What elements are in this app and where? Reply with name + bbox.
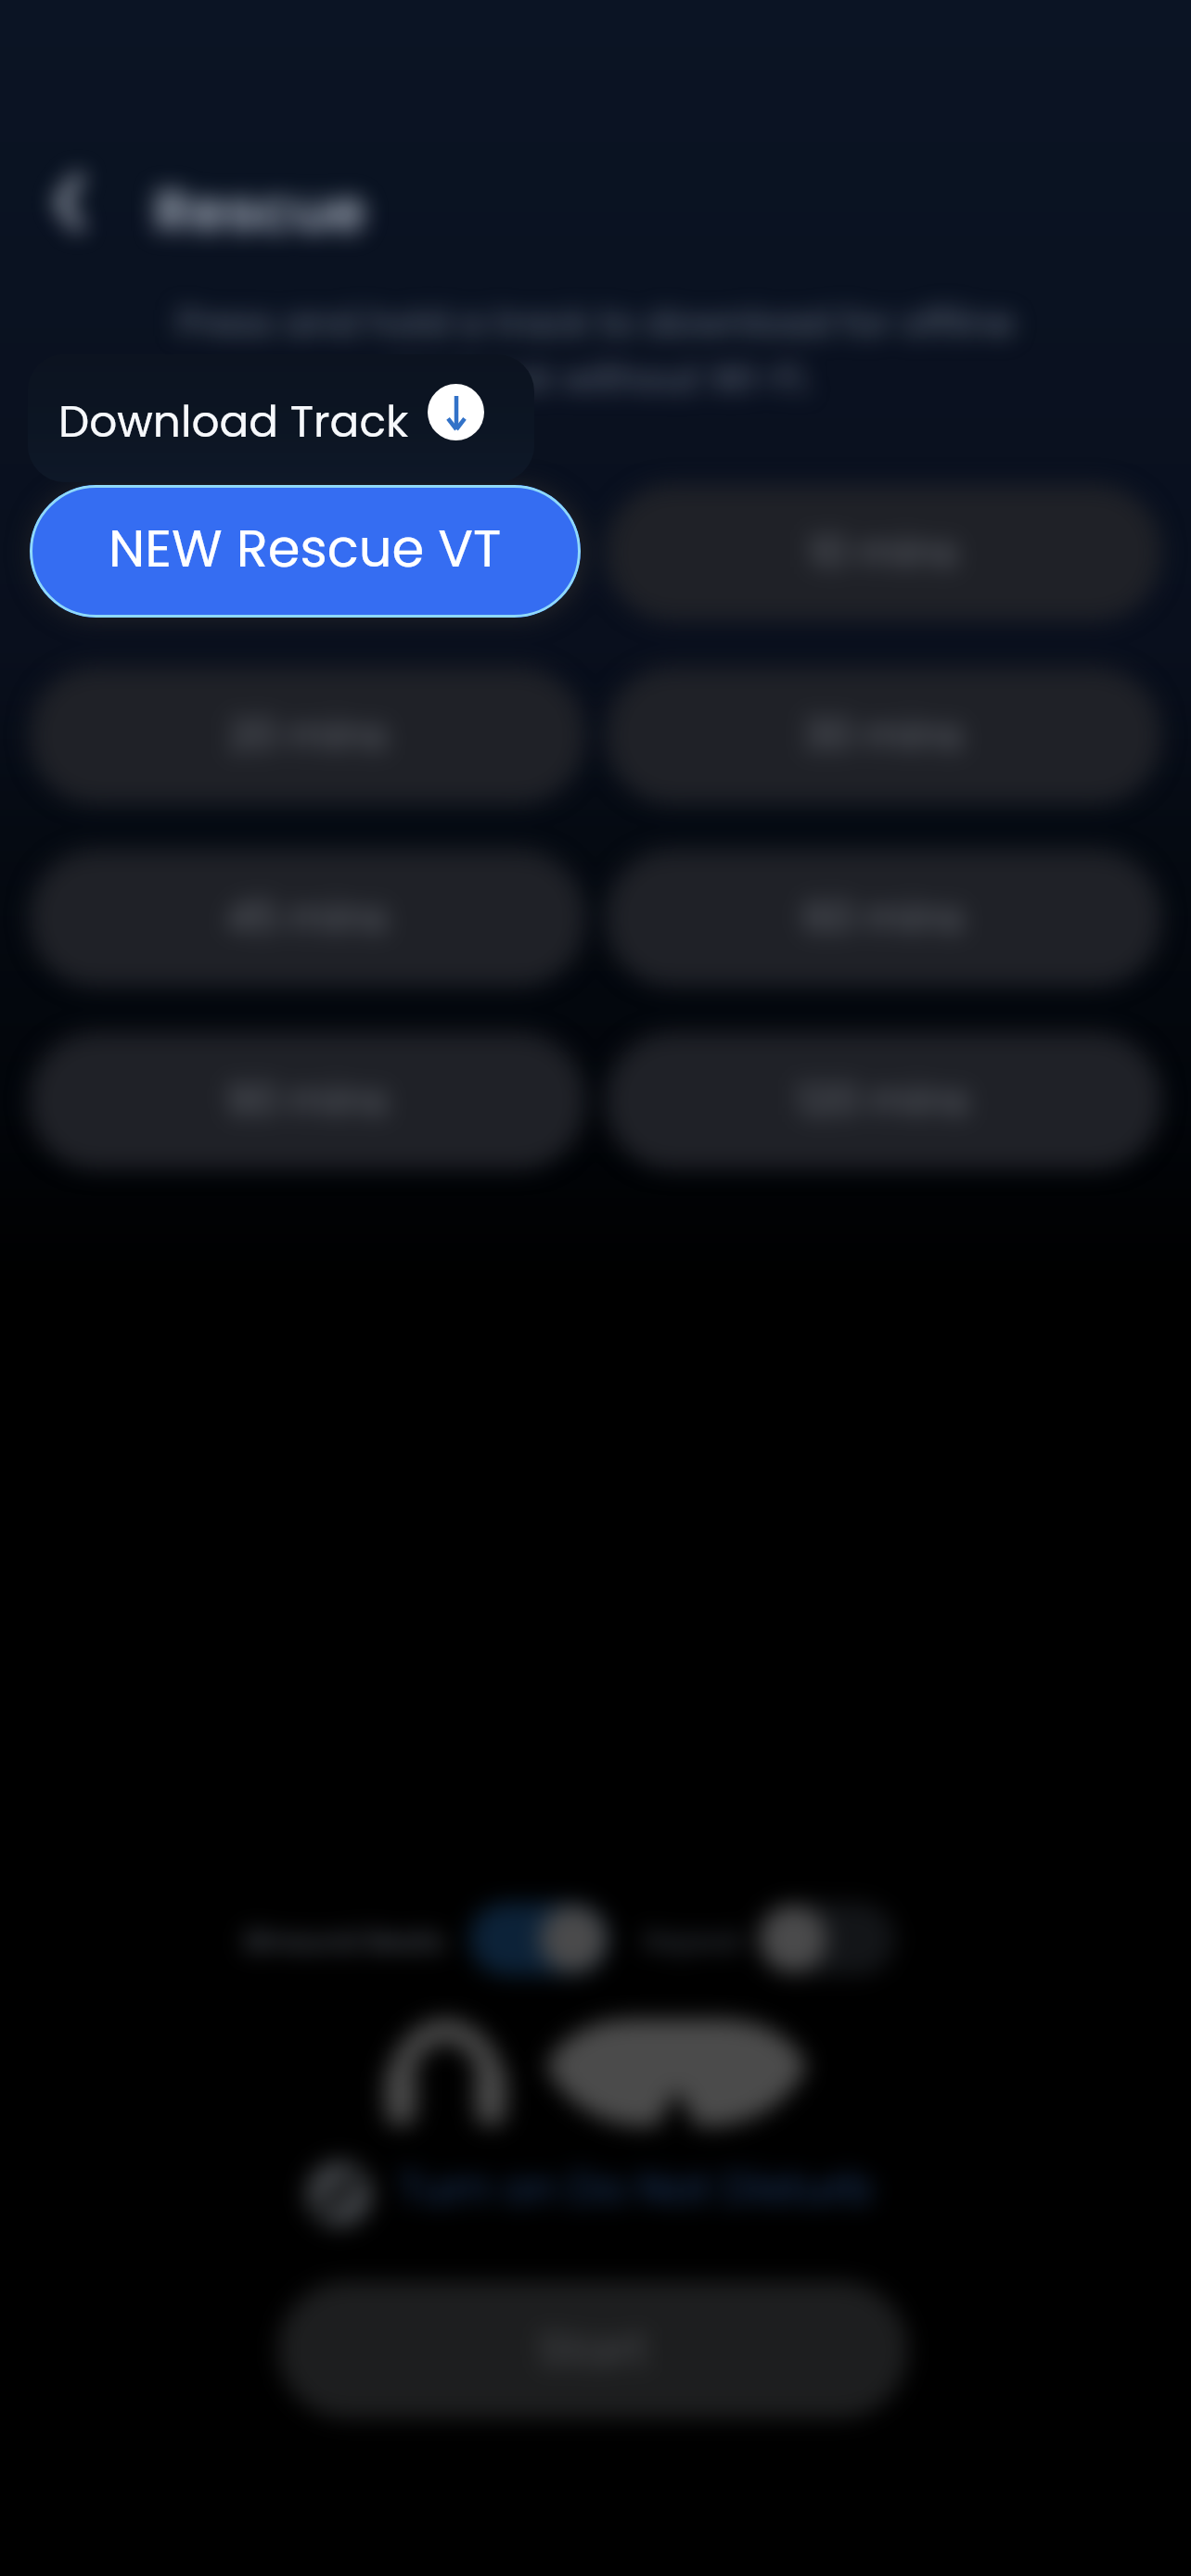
staticText: 10 mins: [809, 524, 958, 581]
button[interactable]: 30 mins: [606, 667, 1161, 804]
button[interactable]: 120 mins: [606, 1032, 1161, 1169]
button[interactable]: 45 mins: [30, 849, 585, 987]
staticText: Download Track: [58, 391, 409, 453]
staticText: Rescue: [154, 171, 366, 251]
button[interactable]: 90 mins: [30, 1032, 585, 1169]
button[interactable]: 60 mins: [606, 849, 1161, 987]
staticText: 20 mins: [228, 707, 388, 764]
staticText: Press and hold a track to download for o…: [0, 297, 1191, 404]
staticText: NEW Rescue VT: [109, 512, 502, 584]
button[interactable]: Download Track: [28, 354, 534, 482]
staticText: Repeat: [644, 1922, 743, 1961]
staticText: Binaural Beats: [245, 1922, 445, 1961]
button[interactable]: NEW Rescue VT: [30, 485, 581, 618]
button[interactable]: 20 mins: [30, 667, 585, 804]
button[interactable]: 10 mins: [606, 484, 1161, 621]
button[interactable]: Start: [278, 2281, 908, 2418]
button[interactable]: Do Not Disturb: [306, 2161, 373, 2227]
other: VR headset: [546, 2019, 807, 2131]
button[interactable]: Repeat toggle: [757, 1903, 895, 1975]
button[interactable]: 5 mins: [30, 484, 585, 621]
staticText: Start: [538, 2317, 648, 2382]
staticText: 90 mins: [226, 1072, 389, 1129]
button[interactable]: Turn on Do Not Disturb: [398, 2159, 873, 2218]
button[interactable]: Binaural Beats toggle: [469, 1903, 609, 1975]
button[interactable]: Back: [23, 156, 116, 249]
staticText: 30 mins: [803, 707, 964, 764]
staticText: 45 mins: [226, 889, 389, 947]
staticText: 5 mins: [239, 524, 376, 581]
staticText: 60 mins: [802, 889, 965, 947]
staticText: 120 mins: [797, 1072, 970, 1129]
other: Headphones: [385, 2019, 506, 2126]
